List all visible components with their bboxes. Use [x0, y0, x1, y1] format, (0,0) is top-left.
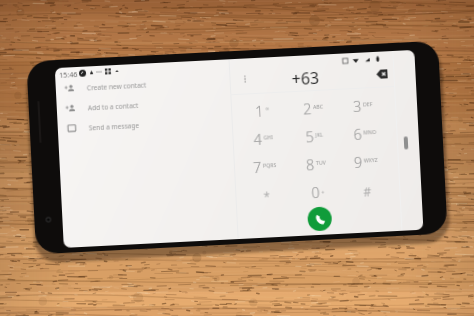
- button[interactable]: 8: [291, 150, 341, 178]
- staticText: +: [321, 189, 325, 196]
- button[interactable]: 2: [288, 94, 338, 122]
- button[interactable]: 4: [239, 124, 288, 153]
- staticText: WXYZ: [364, 156, 378, 164]
- staticText: DEF: [363, 100, 373, 108]
- button[interactable]: 0: [293, 178, 342, 206]
- staticText: Add to a contact: [88, 101, 139, 112]
- staticText: 1: [255, 101, 265, 121]
- staticText: 3: [352, 96, 362, 116]
- button[interactable]: Send a message: [66, 111, 227, 138]
- button[interactable]: Add to a contact: [65, 91, 226, 118]
- staticText: 2: [303, 98, 313, 119]
- staticText: 5: [305, 126, 315, 146]
- button[interactable]: 1: [237, 96, 287, 125]
- staticText: TUV: [316, 158, 326, 166]
- button[interactable]: 7: [240, 152, 290, 181]
- staticText: Send a message: [89, 121, 140, 132]
- staticText: +63: [291, 67, 320, 90]
- button[interactable]: 5: [290, 122, 339, 150]
- staticText: 9: [353, 152, 363, 172]
- staticText: 15:46: [59, 69, 78, 79]
- staticText: ABC: [313, 103, 323, 110]
- staticText: 7: [252, 157, 262, 177]
- staticText: 4: [253, 129, 263, 149]
- button[interactable]: Call: [307, 206, 332, 231]
- button[interactable]: #: [343, 175, 392, 204]
- staticText: GHI: [263, 133, 274, 141]
- button[interactable]: *: [242, 180, 291, 209]
- button[interactable]: Backspace: [372, 64, 392, 84]
- staticText: #: [363, 183, 372, 200]
- button[interactable]: 9: [341, 147, 390, 176]
- button[interactable]: Create new contact: [64, 72, 225, 98]
- button[interactable]: More options: [235, 69, 255, 89]
- staticText: 8: [305, 154, 315, 174]
- staticText: JKL: [315, 131, 324, 138]
- staticText: Create new contact: [87, 80, 147, 92]
- staticText: *: [263, 188, 271, 205]
- staticText: ∞: [265, 105, 270, 111]
- staticText: 0: [311, 182, 321, 202]
- staticText: MNO: [363, 128, 376, 135]
- staticText: PQRS: [263, 161, 277, 169]
- staticText: 6: [353, 124, 363, 144]
- button[interactable]: 3: [338, 91, 388, 120]
- button[interactable]: 6: [340, 119, 389, 148]
